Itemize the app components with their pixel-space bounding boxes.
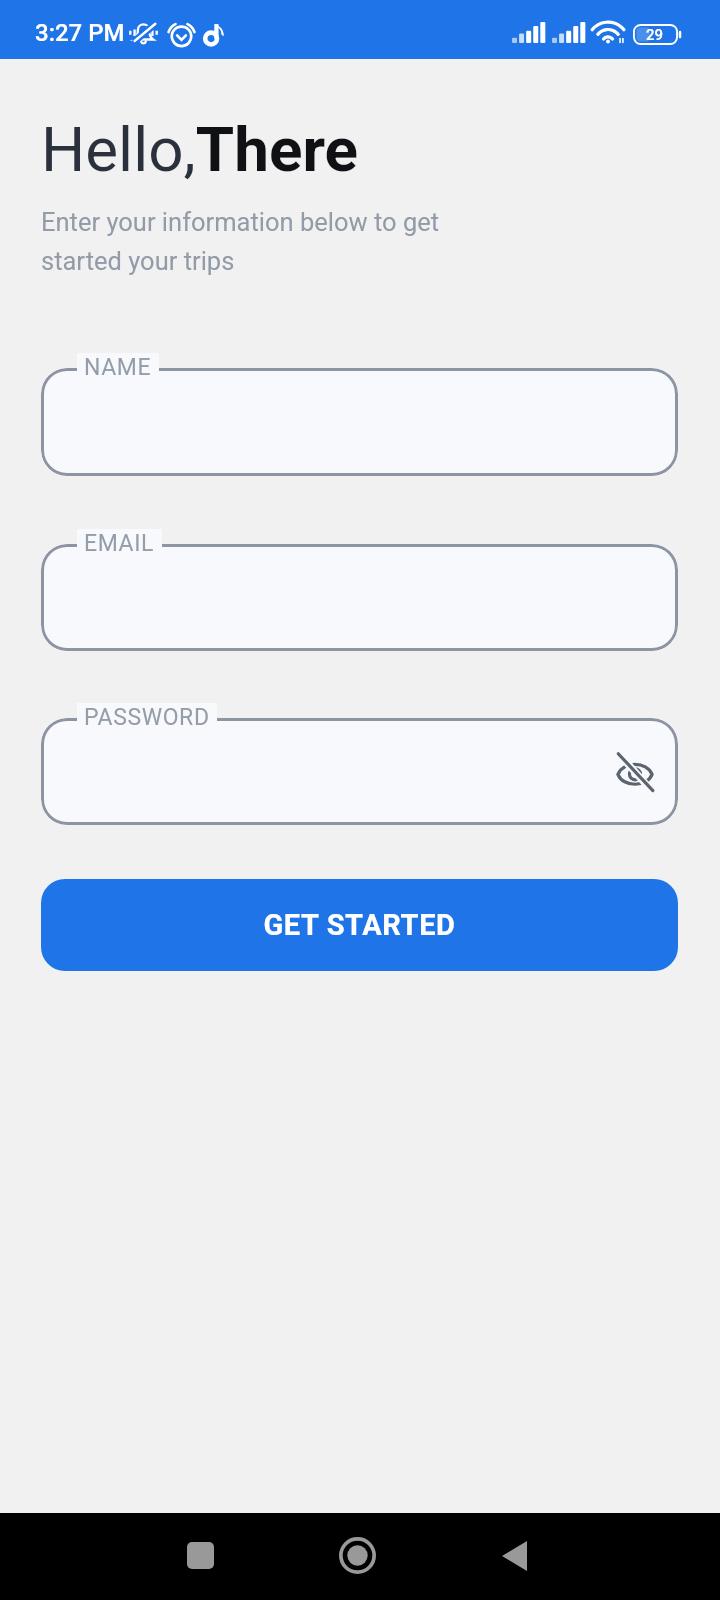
staticText: GET STARTED bbox=[263, 908, 456, 942]
button[interactable] bbox=[41, 544, 678, 651]
staticText: EMAIL bbox=[84, 530, 155, 557]
button[interactable]: Show password bbox=[607, 744, 663, 800]
button[interactable] bbox=[41, 368, 678, 476]
button[interactable]: Recents bbox=[156, 1512, 245, 1599]
button[interactable]: Home bbox=[313, 1512, 402, 1599]
button[interactable]: GET STARTED bbox=[41, 879, 678, 971]
staticText: 3:27 PM bbox=[35, 19, 125, 47]
button[interactable]: Show password bbox=[41, 718, 678, 825]
staticText: 29 bbox=[646, 26, 664, 44]
staticText: PASSWORD bbox=[84, 704, 210, 731]
staticText: Hello,There bbox=[41, 113, 359, 186]
button[interactable]: Back bbox=[470, 1512, 559, 1599]
staticText: NAME bbox=[84, 354, 152, 381]
staticText: Enter your information below to get star… bbox=[41, 207, 440, 276]
